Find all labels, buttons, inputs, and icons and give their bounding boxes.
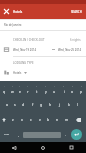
button[interactable]: n (53, 112, 62, 127)
button[interactable]: m (62, 112, 71, 127)
staticText: s (14, 102, 16, 107)
button[interactable]: Close (0, 4, 13, 19)
button[interactable]: ?123 (0, 127, 13, 142)
staticText: 4 (27, 85, 29, 88)
button[interactable]: j (55, 97, 64, 112)
staticText: p (80, 89, 83, 94)
button[interactable]: a (3, 97, 11, 112)
button[interactable]: k (64, 97, 73, 112)
staticText: CHECK-IN / CHECK-OUT (13, 38, 45, 42)
staticText: ?123 (4, 133, 9, 136)
staticText: . (65, 133, 66, 137)
staticText: 1 (4, 85, 6, 88)
button[interactable]: z (8, 112, 17, 127)
button[interactable]: 1 (0, 81, 8, 97)
button[interactable]: 2 (8, 81, 16, 97)
staticText: x (21, 117, 23, 122)
staticText: LODGING TYPE (13, 61, 34, 65)
staticText: c (30, 117, 32, 122)
staticText: 7 (54, 85, 56, 88)
staticText: y (45, 89, 47, 94)
staticText: v (39, 117, 41, 122)
staticText: q (3, 89, 6, 94)
button[interactable]: x (17, 112, 26, 127)
button[interactable]: g (37, 97, 46, 112)
button[interactable]: 4 (24, 81, 32, 97)
staticText: z (12, 117, 14, 122)
staticText: e (19, 89, 21, 94)
staticText: 6 nights (70, 38, 81, 42)
staticText: j (59, 102, 60, 107)
staticText: n (56, 117, 59, 122)
staticText: Wed, Nov 19 2014 (13, 48, 37, 52)
button[interactable]: , (13, 127, 23, 142)
button[interactable]: Shift (0, 112, 8, 127)
staticText: 9 (72, 85, 74, 88)
staticText: u (53, 89, 56, 94)
staticText: Wed, Nov 25 2014 (58, 48, 82, 52)
staticText: m (65, 117, 69, 122)
button[interactable]: Back (0, 142, 28, 153)
staticText: b (47, 117, 50, 122)
button[interactable]: 7 (50, 81, 59, 97)
staticText: a (6, 102, 8, 107)
staticText: 6 (45, 85, 47, 88)
staticText: 0 (81, 85, 83, 88)
button[interactable]: . (61, 127, 70, 142)
button[interactable]: v (35, 112, 44, 127)
staticText: Hotels (13, 71, 22, 75)
staticText: 5 (36, 85, 38, 88)
staticText: h (49, 102, 52, 107)
staticText: g (40, 102, 43, 107)
staticText: 8 (63, 85, 65, 88)
button[interactable]: d (19, 97, 28, 112)
button[interactable]: h (46, 97, 55, 112)
staticText: d (22, 102, 25, 107)
staticText: w (11, 89, 14, 94)
button[interactable]: 3 (16, 81, 24, 97)
staticText: k (68, 102, 70, 107)
staticText: , (18, 133, 19, 137)
staticText: SEARCH (71, 10, 82, 14)
button[interactable]: Enter (71, 129, 82, 140)
staticText: f (32, 102, 34, 107)
button[interactable]: 9 (68, 81, 77, 97)
button[interactable]: Home (28, 142, 57, 153)
button[interactable]: b (44, 112, 53, 127)
button[interactable]: 8 (59, 81, 68, 97)
staticText: 2 (12, 85, 14, 88)
staticText: i (64, 89, 65, 94)
staticText: o (71, 89, 74, 94)
staticText: Hotels (13, 10, 23, 14)
button[interactable]: Recents (57, 142, 86, 153)
staticText: 3 (19, 85, 21, 88)
button[interactable]: 5 (32, 81, 41, 97)
button[interactable]: Backspace (71, 112, 86, 127)
staticText: l (77, 102, 78, 107)
button[interactable]: 0 (77, 81, 86, 97)
button[interactable]: f (28, 97, 37, 112)
staticText: r (27, 89, 29, 94)
staticText: t (36, 89, 38, 94)
button[interactable]: SEARCH (67, 4, 86, 19)
staticText: Rio de Janeiro (4, 23, 22, 27)
button[interactable]: 6 (41, 81, 50, 97)
button[interactable]: s (11, 97, 19, 112)
button[interactable]: c (26, 112, 35, 127)
button[interactable]: l (73, 97, 82, 112)
